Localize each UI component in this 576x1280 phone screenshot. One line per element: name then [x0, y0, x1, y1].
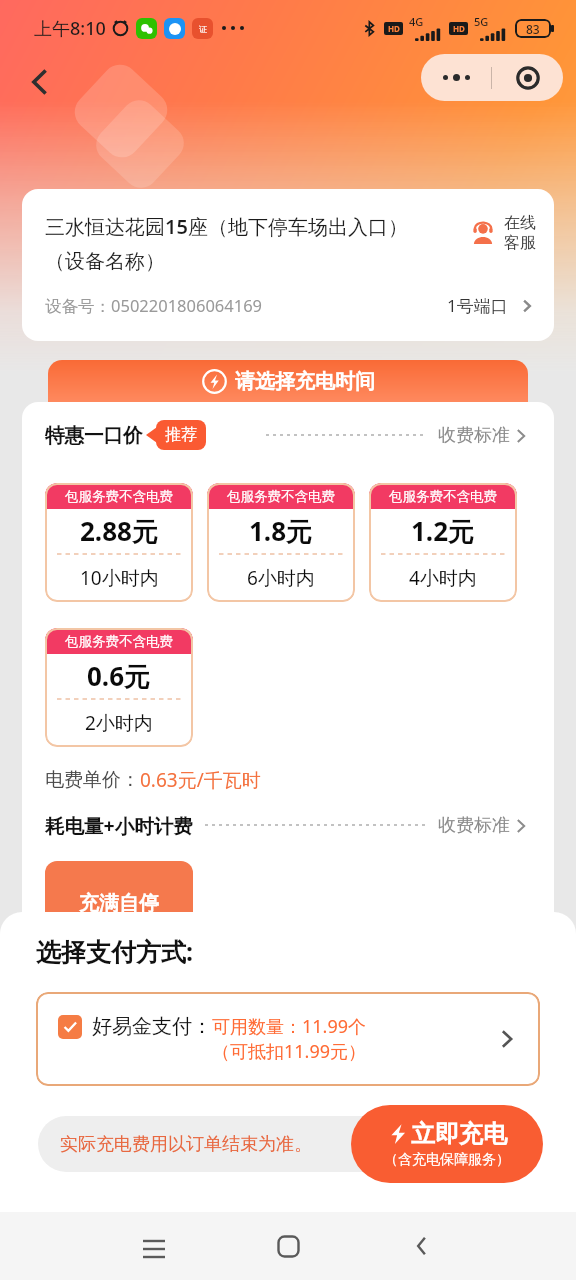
button[interactable]: Back — [398, 1222, 446, 1270]
button[interactable]: Recent apps — [130, 1222, 178, 1270]
staticText: 1号端口 — [447, 294, 508, 317]
button[interactable]: 收费标准 — [438, 814, 531, 837]
staticText: 电费单价： — [45, 768, 140, 792]
button[interactable]: 在线 — [470, 213, 536, 253]
staticText: 0.63元/千瓦时 — [140, 767, 261, 793]
staticText: 请选择充电时间 — [235, 369, 375, 394]
staticText: 包服务费不含电费 — [65, 633, 173, 650]
button[interactable]: 收费标准 — [438, 424, 531, 447]
staticText: 充满自停 — [79, 891, 159, 916]
staticText: 5G — [474, 14, 489, 29]
staticText: 收费标准 — [438, 424, 510, 447]
button[interactable]: Home — [264, 1222, 312, 1270]
staticText: 设备号：0502201806064169 — [45, 294, 263, 317]
staticText: 三水恒达花园15座（地下停车场出入口）（设备名称） — [45, 213, 441, 274]
button[interactable]: More options — [421, 74, 491, 81]
staticText: 证 — [199, 24, 207, 34]
button[interactable]: 包服务费不含电费 — [207, 483, 355, 602]
staticText: 选择支付方式: — [36, 934, 194, 968]
staticText: （含充电保障服务） — [384, 1151, 510, 1169]
staticText: 客服 — [504, 233, 536, 253]
staticText: 1.2元 — [411, 513, 475, 549]
staticText: 1.8元 — [249, 513, 313, 549]
button[interactable]: 立即充电 — [351, 1105, 543, 1183]
staticText: 收费标准 — [438, 814, 510, 837]
staticText: 好易金支付： — [92, 1014, 212, 1039]
button[interactable]: Back — [20, 62, 60, 102]
button[interactable]: 包服务费不含电费 — [45, 628, 193, 747]
staticText: 推荐 — [165, 425, 197, 445]
staticText: 0.6元 — [87, 658, 151, 694]
staticText: 2.88元 — [80, 513, 158, 549]
button[interactable]: 充满自停 — [45, 861, 193, 945]
staticText: HD — [388, 23, 400, 34]
staticText: 包服务费不含电费 — [389, 488, 497, 505]
staticText: 10小时内 — [80, 565, 159, 591]
staticText: 2小时内 — [85, 710, 153, 736]
staticText: 6小时内 — [247, 565, 315, 591]
button[interactable]: Close mini program — [492, 66, 563, 90]
staticText: 包服务费不含电费 — [65, 488, 173, 505]
staticText: 包服务费不含电费 — [227, 488, 335, 505]
button[interactable]: 好易金支付： — [36, 992, 540, 1086]
staticText: 上午8:10 — [34, 16, 106, 41]
staticText: 立即充电 — [411, 1119, 507, 1149]
staticText: 83 — [526, 21, 540, 37]
staticText: 特惠一口价 — [45, 423, 143, 448]
button[interactable]: 请选择充电时间 — [48, 360, 528, 406]
staticText: （可抵扣11.99元） — [212, 1039, 367, 1064]
button[interactable]: 包服务费不含电费 — [369, 483, 517, 602]
staticText: 可用数量：11.99个 — [212, 1014, 367, 1039]
staticText: 4小时内 — [409, 565, 477, 591]
staticText: 实际充电费用以订单结束为准。 — [60, 1133, 312, 1156]
button[interactable]: 1号端口 — [447, 294, 536, 317]
staticText: 耗电量+小时计费 — [45, 812, 193, 839]
staticText: HD — [453, 23, 465, 34]
button[interactable]: 包服务费不含电费 — [45, 483, 193, 602]
staticText: 在线 — [504, 213, 536, 233]
staticText: 4G — [409, 14, 424, 29]
